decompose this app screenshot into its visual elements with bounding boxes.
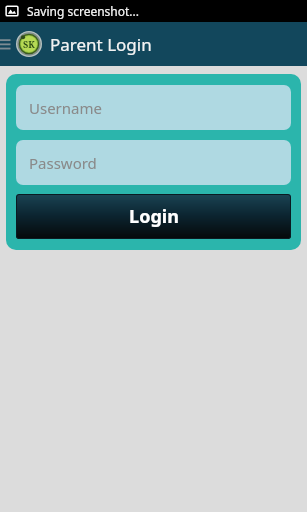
staticText: Parent Login bbox=[50, 33, 152, 56]
staticText: SK bbox=[23, 38, 35, 50]
staticText: Saving screenshot... bbox=[27, 3, 140, 19]
staticText: Username bbox=[29, 98, 102, 118]
button[interactable]: Username bbox=[16, 85, 291, 130]
button[interactable]: Password bbox=[16, 140, 291, 185]
button[interactable]: Open navigation menu bbox=[0, 22, 14, 66]
button[interactable]: Login bbox=[16, 194, 291, 239]
staticText: Login bbox=[129, 204, 179, 229]
staticText: Password bbox=[29, 153, 97, 173]
